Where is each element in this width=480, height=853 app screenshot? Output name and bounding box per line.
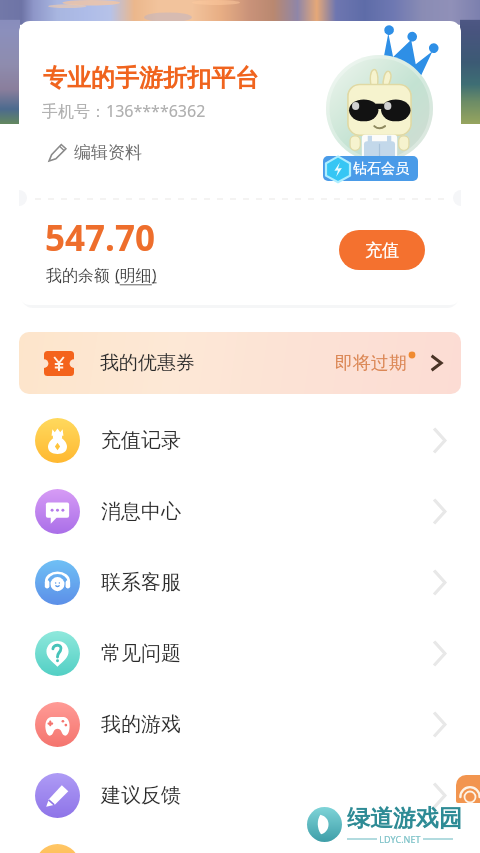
- staticText: 我的余额: [46, 264, 115, 286]
- staticText: 手机号：136****6362: [42, 100, 206, 122]
- staticText: 钻石会员: [353, 160, 409, 178]
- button[interactable]: Customer service: [456, 775, 480, 803]
- staticText: 编辑资料: [74, 142, 142, 163]
- button[interactable]: Avatar: [326, 55, 433, 162]
- staticText: 建议反馈: [101, 783, 181, 808]
- staticText: 绿道游戏园: [347, 804, 462, 833]
- button[interactable]: 设置: [0, 831, 480, 853]
- staticText: 联系客服: [101, 570, 181, 595]
- button[interactable]: (明细): [115, 264, 157, 286]
- button[interactable]: 充值: [339, 230, 425, 270]
- staticText: 专业的手游折扣平台: [43, 63, 259, 93]
- staticText: 我的优惠券: [100, 351, 195, 375]
- button[interactable]: 建议反馈: [0, 760, 480, 831]
- staticText: 充值记录: [101, 428, 181, 453]
- staticText: LDYC.NET: [377, 833, 423, 845]
- staticText: 充值: [365, 240, 399, 261]
- button[interactable]: 常见问题: [0, 618, 480, 689]
- button[interactable]: 我的优惠券: [19, 332, 461, 394]
- button[interactable]: 编辑资料: [45, 140, 144, 165]
- staticText: 即将过期: [335, 352, 407, 375]
- staticText: 消息中心: [101, 499, 181, 524]
- button[interactable]: 消息中心: [0, 476, 480, 547]
- button[interactable]: 充值记录: [0, 405, 480, 476]
- staticText: 常见问题: [101, 641, 181, 666]
- button[interactable]: 我的游戏: [0, 689, 480, 760]
- staticText: 547.70: [45, 214, 155, 262]
- staticText: 我的游戏: [101, 712, 181, 737]
- button[interactable]: 钻石会员: [323, 156, 418, 181]
- button[interactable]: 联系客服: [0, 547, 480, 618]
